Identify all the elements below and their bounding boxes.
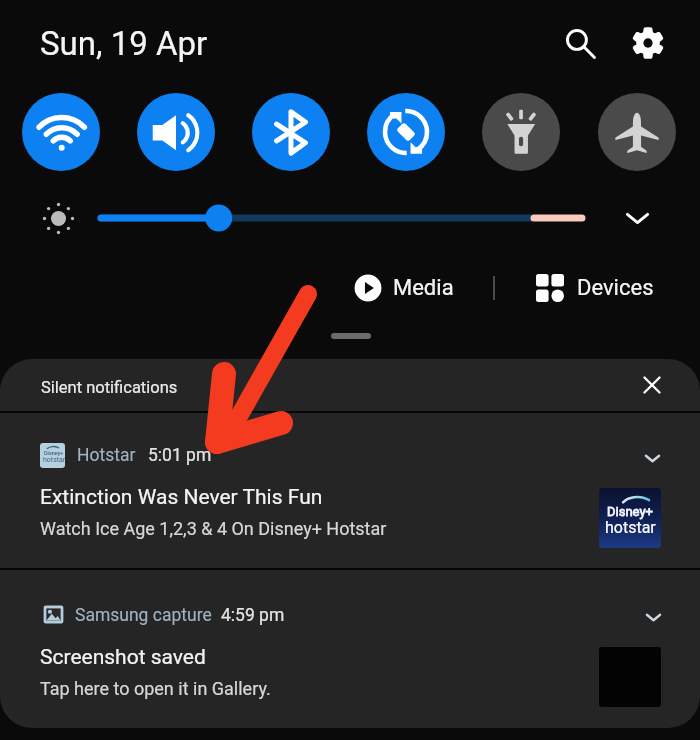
staticText: Silent notifications <box>41 378 178 397</box>
button[interactable]: Expand notification <box>630 436 674 480</box>
staticText: Disney+ <box>44 450 64 456</box>
staticText: Extinction Was Never This Fun <box>40 485 323 510</box>
staticText: Samsung capture <box>75 605 212 626</box>
button[interactable]: Media <box>354 269 454 307</box>
staticText: 5:01 pm <box>148 445 212 466</box>
button[interactable]: Settings <box>624 19 672 67</box>
staticText: Disney+ <box>607 504 653 519</box>
button[interactable]: Search <box>556 19 604 67</box>
staticText: Screenshot saved <box>40 645 206 670</box>
button[interactable]: Expand quick settings <box>615 196 660 241</box>
button[interactable]: Samsung capture <box>0 570 700 727</box>
staticText: 4:59 pm <box>221 605 285 626</box>
staticText: hotstar <box>605 518 656 537</box>
button[interactable]: Devices <box>536 269 654 307</box>
staticText: Hotstar <box>77 445 136 466</box>
staticText: hotstar <box>43 456 65 464</box>
button[interactable]: Sound <box>137 93 215 171</box>
staticText: Devices <box>577 275 654 301</box>
button[interactable]: Wi-Fi <box>22 93 100 171</box>
button[interactable]: Bluetooth <box>252 93 330 171</box>
button[interactable]: Auto rotate <box>367 93 445 171</box>
staticText: Sun, 19 Apr <box>40 24 208 63</box>
button[interactable]: Expand notification <box>631 595 675 639</box>
button[interactable]: Brightness <box>88 200 598 236</box>
button[interactable]: Airplane mode <box>598 93 676 171</box>
staticText: Media <box>393 275 454 301</box>
staticText: Watch Ice Age 1,2,3 & 4 On Disney+ Hotst… <box>40 518 387 539</box>
button[interactable]: Flashlight <box>482 93 560 171</box>
staticText: Tap here to open it in Gallery. <box>40 678 271 699</box>
button[interactable]: Dismiss all <box>630 363 674 407</box>
button[interactable]: Disney+ <box>0 413 700 568</box>
